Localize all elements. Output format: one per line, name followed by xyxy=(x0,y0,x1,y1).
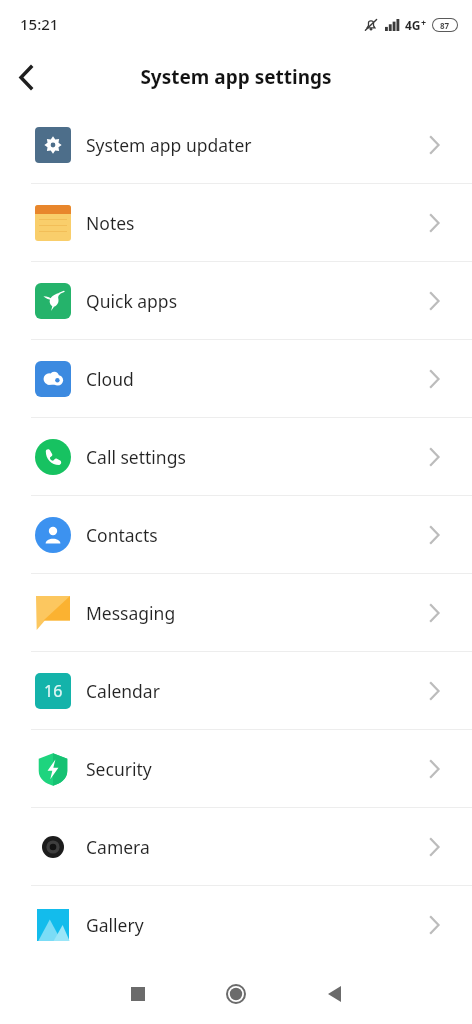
staticText: Camera xyxy=(86,835,430,859)
staticText: Messaging xyxy=(86,601,430,625)
staticText: 15:21 xyxy=(20,14,59,34)
staticText: Gallery xyxy=(86,913,430,937)
button[interactable]: Recents xyxy=(103,963,173,1024)
button[interactable]: Security xyxy=(0,730,472,807)
staticText: 16 xyxy=(44,680,63,702)
staticText: Quick apps xyxy=(86,289,430,313)
staticText: Contacts xyxy=(86,523,430,547)
button[interactable]: Contacts xyxy=(0,496,472,573)
button[interactable]: Home xyxy=(201,963,271,1024)
button[interactable]: Messaging xyxy=(0,574,472,651)
staticText: Calendar xyxy=(86,679,430,703)
button[interactable]: Camera xyxy=(0,808,472,885)
staticText: Call settings xyxy=(86,445,430,469)
staticText: Security xyxy=(86,757,430,781)
button[interactable]: Gallery xyxy=(0,886,472,963)
staticText: Cloud xyxy=(86,367,430,391)
button[interactable]: System app updater xyxy=(0,106,472,183)
button[interactable]: Cloud xyxy=(0,340,472,417)
staticText: 87 xyxy=(440,20,450,31)
button[interactable]: Back xyxy=(299,963,369,1024)
staticText: System app settings xyxy=(140,64,332,90)
staticText: + xyxy=(421,16,427,28)
staticText: 4G xyxy=(405,17,421,33)
button[interactable]: Call settings xyxy=(0,418,472,495)
button[interactable]: Notes xyxy=(0,184,472,261)
staticText: Notes xyxy=(86,211,430,235)
button[interactable]: Back xyxy=(0,51,52,103)
button[interactable]: Quick apps xyxy=(0,262,472,339)
staticText: System app updater xyxy=(86,133,430,157)
button[interactable]: 16 xyxy=(0,652,472,729)
